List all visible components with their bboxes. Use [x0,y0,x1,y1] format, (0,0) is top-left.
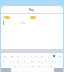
button[interactable]: k [49,58,56,63]
staticText: j [45,59,46,62]
staticText: e [17,54,19,57]
button[interactable]: g [28,58,35,63]
staticText: m [50,64,53,67]
button[interactable]: d [14,58,21,63]
button[interactable]: y [33,53,39,58]
button[interactable]: e [15,53,21,58]
staticText: l [59,59,60,62]
staticText: u [41,54,43,57]
button[interactable]: n [42,63,48,68]
button[interactable]: a [1,58,7,63]
staticText: v [32,64,34,67]
staticText: n [44,64,46,67]
staticText: w [11,54,13,57]
staticText: d [17,59,19,62]
staticText: c [26,64,28,67]
button[interactable]: t [27,53,33,58]
button[interactable]: x [18,63,24,68]
staticText: i [48,54,49,57]
button[interactable]: w [8,53,15,58]
staticText: b [38,64,40,67]
button[interactable]: r [21,53,27,58]
staticText: p [59,54,61,57]
staticText: f [24,59,25,62]
staticText: q [4,54,6,57]
button[interactable]: q [1,53,8,58]
button[interactable]: b [36,63,42,68]
staticText: a [3,59,5,62]
button[interactable]: m [48,63,54,68]
button[interactable]: z [11,63,18,68]
staticText: s [10,59,12,62]
staticText: y [35,54,37,57]
staticText: k [52,59,54,62]
staticText: Pay [29,8,35,12]
button[interactable]: f [21,58,28,63]
button[interactable]: v [30,63,36,68]
button[interactable]: h [35,58,42,63]
button[interactable] [30,16,36,19]
button[interactable]: u [39,53,45,58]
button[interactable] [3,16,10,19]
staticText: x [20,64,22,67]
staticText: z [14,64,16,67]
button[interactable]: s [7,58,14,63]
button[interactable]: Pay [1,6,63,13]
button[interactable]: p [57,53,63,58]
button[interactable]: l [56,58,63,63]
staticText: h [38,59,40,62]
button[interactable]: i [45,53,51,58]
staticText: r [24,54,25,57]
staticText: hello [20,21,26,25]
button[interactable]: j [42,58,49,63]
button[interactable]: c [24,63,30,68]
staticText: t [30,54,31,57]
button[interactable] [51,53,57,58]
staticText: g [31,59,33,62]
